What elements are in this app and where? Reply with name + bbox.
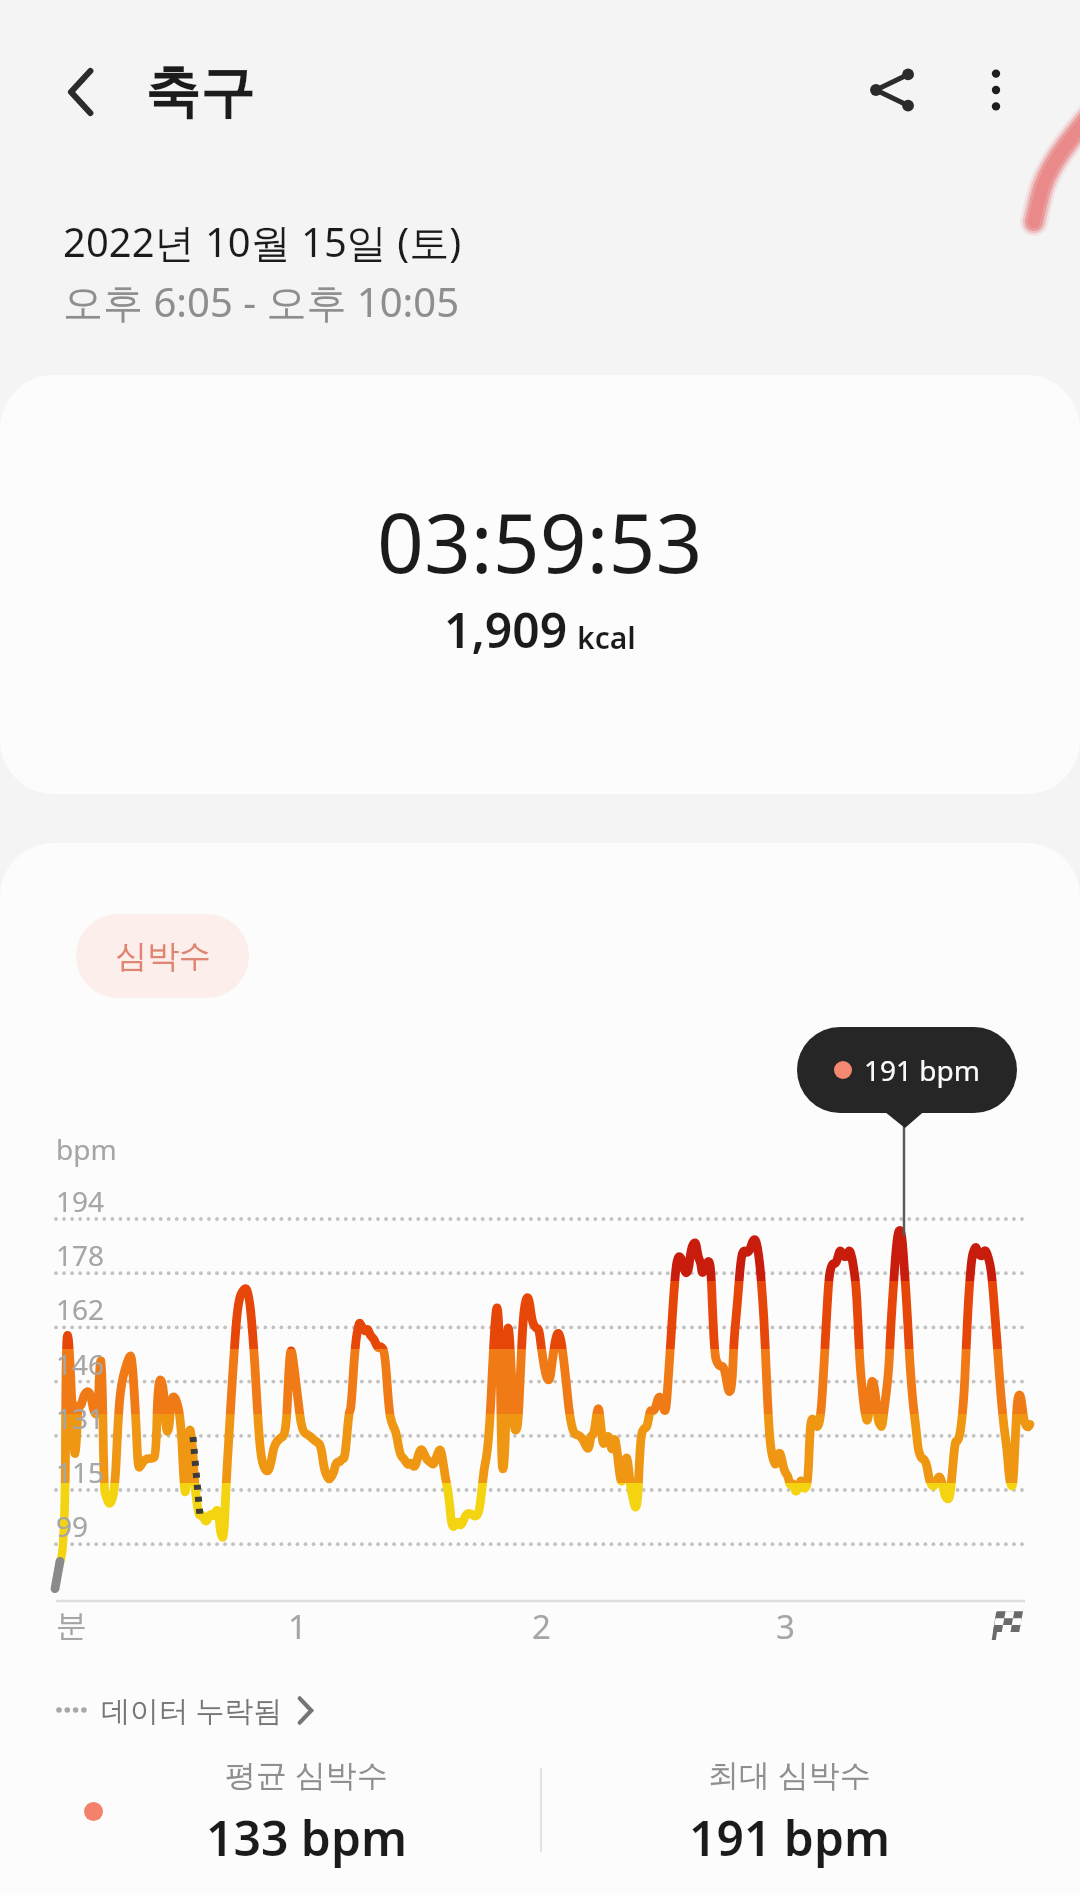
staticText: 1,909 — [444, 597, 568, 662]
button[interactable]: 심박수 — [76, 914, 249, 998]
staticText: 115 — [56, 1453, 105, 1491]
staticText: 심박수 — [115, 936, 211, 976]
staticText: 146 — [56, 1345, 105, 1383]
button[interactable]: 191 bpm — [797, 1027, 1017, 1113]
staticText: 평균 심박수 — [225, 1753, 389, 1795]
staticText: 1 — [288, 1604, 307, 1649]
staticText: 2 — [532, 1604, 551, 1649]
staticText: 191 bpm — [689, 1805, 891, 1870]
staticText: 데이터 누락됨 — [101, 1690, 283, 1730]
button[interactable]: Workout finished — [978, 1596, 1036, 1654]
staticText: 오후 6:05 - 오후 10:05 — [63, 274, 460, 329]
button[interactable]: 03:59:53 — [0, 375, 1080, 794]
staticText: 191 bpm — [864, 1051, 980, 1089]
button[interactable]: 평균 심박수 — [127, 1753, 487, 1863]
button[interactable]: More options — [944, 38, 1048, 142]
staticText: 162 — [56, 1290, 105, 1328]
staticText: 133 bpm — [206, 1805, 408, 1870]
button[interactable]: 최대 심박수 — [610, 1753, 970, 1863]
staticText: 03:59:53 — [377, 485, 703, 597]
button[interactable]: Back — [26, 40, 130, 144]
button[interactable]: 데이터 누락됨 — [56, 1686, 314, 1734]
staticText: 2022년 10월 15일 (토) — [63, 214, 462, 269]
staticText: 최대 심박수 — [708, 1753, 872, 1795]
staticText: bpm — [56, 1130, 117, 1168]
staticText: 축구 — [145, 58, 255, 127]
staticText: 분 — [56, 1606, 87, 1645]
staticText: 99 — [56, 1507, 89, 1545]
staticText: 178 — [56, 1236, 105, 1274]
staticText: 194 — [56, 1182, 105, 1220]
staticText: 131 — [56, 1399, 105, 1437]
staticText: kcal — [577, 617, 636, 658]
button[interactable]: Share — [840, 38, 944, 142]
staticText: 3 — [776, 1604, 795, 1649]
